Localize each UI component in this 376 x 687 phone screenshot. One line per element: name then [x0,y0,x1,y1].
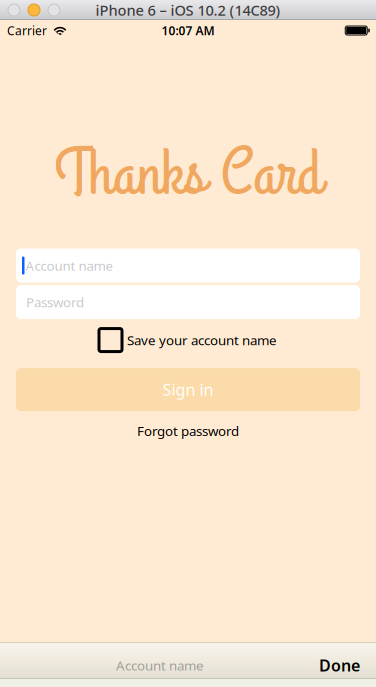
staticText: Save your account name [127,331,277,349]
staticText: Thanks Card [54,129,321,220]
button[interactable]: Done [307,655,360,676]
button[interactable]: Save your account name [99,329,277,352]
button[interactable]: Sign in [16,368,360,411]
staticText: Carrier [7,22,47,38]
staticText: 10:07 AM [161,22,214,38]
staticText: Password [26,293,84,311]
button[interactable]: Forgot password [137,420,239,442]
staticText: iPhone 6 – iOS 10.2 (14C89) [95,0,280,20]
staticText: Done [319,655,360,676]
staticText: Forgot password [137,422,239,440]
staticText: Sign in [162,379,213,400]
staticText: Account name [25,257,113,274]
staticText: Account name [116,656,204,674]
